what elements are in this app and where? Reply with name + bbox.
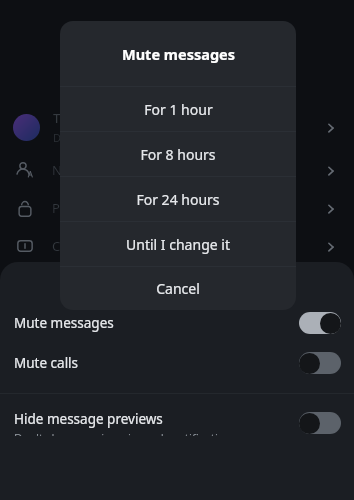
- staticText: Pr: [52, 199, 66, 217]
- button[interactable]: Mute messages toggle: [299, 312, 341, 334]
- staticText: Mute messages: [14, 314, 114, 332]
- staticText: Don't show previews in push notification…: [14, 430, 241, 436]
- staticText: Until I change it: [126, 235, 230, 254]
- button[interactable]: Hide message previews: [0, 410, 354, 436]
- button[interactable]: For 24 hours: [60, 177, 296, 221]
- button[interactable]: No: [0, 151, 354, 189]
- staticText: Ch: [52, 237, 69, 255]
- button[interactable]: Ch: [0, 227, 354, 265]
- button[interactable]: Cancel: [60, 267, 296, 310]
- staticText: Hide message previews: [14, 410, 163, 428]
- button[interactable]: Pr: [0, 189, 354, 227]
- staticText: Mute calls: [14, 354, 79, 372]
- button[interactable]: For 1 hour: [60, 87, 296, 131]
- button[interactable]: Until I change it: [60, 222, 296, 266]
- button[interactable]: Mute messages: [0, 310, 354, 336]
- staticText: No: [52, 161, 70, 179]
- button[interactable]: For 8 hours: [60, 132, 296, 176]
- staticText: De: [53, 130, 68, 145]
- button[interactable]: Th: [0, 103, 354, 151]
- button[interactable]: Hide message previews toggle: [299, 412, 341, 434]
- button[interactable]: Mute calls toggle: [299, 352, 341, 374]
- staticText: For 1 hour: [144, 100, 213, 119]
- staticText: For 8 hours: [140, 145, 216, 164]
- button[interactable]: Mute calls: [0, 350, 354, 376]
- staticText: Mute messages: [122, 44, 235, 64]
- staticText: Th: [53, 109, 69, 127]
- staticText: Cancel: [156, 279, 200, 298]
- staticText: For 24 hours: [136, 190, 220, 209]
